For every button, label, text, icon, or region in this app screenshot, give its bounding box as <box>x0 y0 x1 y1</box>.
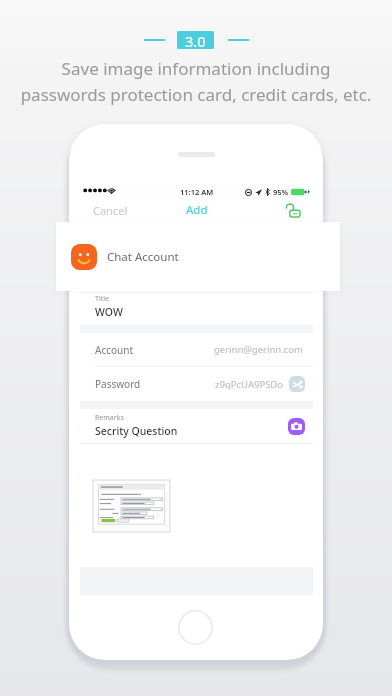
button[interactable]: Add <box>186 202 208 218</box>
staticText: Remarks <box>95 413 124 423</box>
button[interactable]: Add photo <box>288 418 305 435</box>
button[interactable]: Unlock <box>285 202 302 219</box>
button[interactable]: Chat Account <box>56 222 340 291</box>
staticText: WOW <box>95 305 123 319</box>
staticText: z9qPcUA9PSDo <box>215 378 284 391</box>
staticText: Secrity Question <box>95 424 178 438</box>
staticText: 95% <box>273 187 289 197</box>
button[interactable]: Generate password <box>289 376 305 392</box>
staticText: Password <box>95 377 141 391</box>
staticText: Save image information including passwor… <box>0 57 392 106</box>
button[interactable]: Account <box>80 333 313 366</box>
button[interactable]: Remarks <box>80 409 313 443</box>
staticText: Account <box>95 343 134 357</box>
staticText: Chat Account <box>107 249 179 265</box>
staticText: Title <box>95 294 109 304</box>
staticText: 11:12 AM <box>180 187 214 197</box>
button[interactable]: Cancel <box>93 203 128 218</box>
staticText: 3.0 <box>185 31 206 49</box>
button[interactable]: Password <box>80 367 313 401</box>
staticText: gerinn@gerinn.com <box>214 343 303 356</box>
